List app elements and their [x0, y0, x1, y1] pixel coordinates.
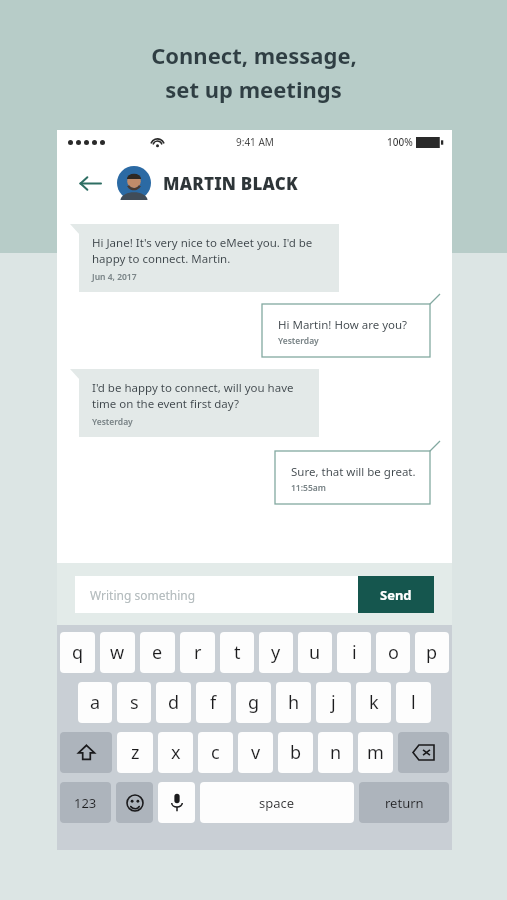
staticText: e	[152, 640, 163, 665]
button[interactable]: Hi Jane! It's very nice to eMeet you. I'…	[79, 224, 339, 292]
button[interactable]: l	[396, 682, 431, 723]
button[interactable]: m	[358, 732, 393, 773]
staticText: happy to connect. Martin.	[92, 251, 231, 267]
button[interactable]: o	[376, 632, 410, 673]
button[interactable]: Shift	[60, 732, 112, 773]
staticText: m	[367, 740, 384, 765]
button[interactable]: z	[117, 732, 153, 773]
staticText: z	[131, 740, 140, 765]
button[interactable]: Hi Martin! How are you?	[262, 304, 430, 357]
staticText: n	[330, 740, 342, 765]
button[interactable]: f	[196, 682, 231, 723]
button[interactable]: q	[60, 632, 95, 673]
button[interactable]: v	[238, 732, 273, 773]
staticText: r	[194, 640, 202, 665]
button[interactable]: j	[316, 682, 351, 723]
button[interactable]: s	[117, 682, 151, 723]
staticText: g	[248, 690, 260, 715]
button[interactable]: i	[337, 632, 371, 673]
staticText: space	[259, 794, 295, 812]
staticText: 9:41 AM	[236, 135, 274, 149]
staticText: y	[271, 640, 281, 665]
button[interactable]: d	[156, 682, 191, 723]
staticText: i	[352, 640, 357, 665]
button[interactable]: g	[236, 682, 271, 723]
button[interactable]: b	[278, 732, 313, 773]
button[interactable]: a	[78, 682, 112, 723]
staticText: Hi Martin! How are you?	[278, 317, 408, 333]
staticText: u	[309, 640, 321, 665]
staticText: I'd be happy to connect, will you have	[92, 380, 294, 396]
button[interactable]: p	[415, 632, 449, 673]
button[interactable]: Emoji	[116, 782, 153, 823]
staticText: 100%	[387, 135, 413, 149]
button[interactable]: u	[298, 632, 332, 673]
staticText: t	[234, 640, 241, 665]
staticText: Writing something	[90, 587, 196, 603]
staticText: j	[331, 690, 336, 715]
button[interactable]: I'd be happy to connect, will you have	[79, 369, 319, 437]
staticText: v	[251, 740, 261, 765]
button[interactable]: h	[276, 682, 311, 723]
staticText: w	[110, 640, 125, 665]
staticText: Sure, that will be great.	[291, 464, 416, 480]
button[interactable]: return	[359, 782, 449, 823]
staticText: MARTIN BLACK	[163, 172, 298, 195]
staticText: q	[72, 640, 84, 665]
staticText: f	[210, 690, 217, 715]
staticText: 123	[74, 794, 97, 812]
button[interactable]: e	[140, 632, 175, 673]
button[interactable]: space	[200, 782, 354, 823]
button[interactable]: n	[318, 732, 353, 773]
staticText: Yesterday	[278, 335, 319, 347]
button[interactable]: k	[356, 682, 391, 723]
staticText: return	[385, 794, 424, 812]
staticText: Connect, message,	[151, 40, 357, 70]
staticText: x	[171, 740, 181, 765]
button[interactable]: Sure, that will be great.	[275, 451, 430, 504]
staticText: Yesterday	[92, 416, 133, 428]
button[interactable]: y	[259, 632, 293, 673]
staticText: p	[426, 640, 438, 665]
staticText: 11:55am	[291, 482, 326, 494]
staticText: Hi Jane! It's very nice to eMeet you. I'…	[92, 235, 313, 251]
button[interactable]: t	[220, 632, 254, 673]
button[interactable]: x	[158, 732, 193, 773]
staticText: time on the event first day?	[92, 396, 239, 412]
staticText: a	[90, 690, 101, 715]
button[interactable]: Send	[358, 576, 434, 613]
button[interactable]: Backspace	[398, 732, 449, 773]
staticText: Jun 4, 2017	[92, 271, 137, 283]
staticText: set up meetings	[165, 74, 342, 104]
button[interactable]: c	[198, 732, 233, 773]
staticText: k	[369, 690, 379, 715]
button[interactable]: Writing something	[75, 576, 358, 613]
staticText: h	[288, 690, 300, 715]
button[interactable]: Voice input	[158, 782, 195, 823]
button[interactable]: 123	[60, 782, 111, 823]
staticText: d	[168, 690, 180, 715]
staticText: Send	[380, 586, 412, 604]
button[interactable]: w	[100, 632, 135, 673]
button[interactable]: Back	[73, 166, 107, 200]
staticText: o	[388, 640, 399, 665]
staticText: l	[411, 690, 416, 715]
staticText: c	[211, 740, 220, 765]
staticText: s	[130, 690, 139, 715]
staticText: b	[290, 740, 302, 765]
button[interactable]: r	[180, 632, 215, 673]
